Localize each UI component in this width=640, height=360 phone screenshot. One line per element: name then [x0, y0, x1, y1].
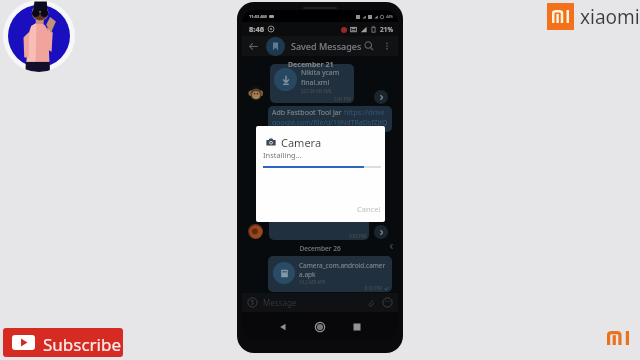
staticText: xiaomi [580, 4, 640, 30]
staticText: Nikita ycam [301, 68, 340, 78]
staticText: Camera [281, 135, 322, 150]
staticText: a.apk [299, 270, 316, 279]
staticText: 3:53 PM [349, 233, 366, 239]
staticText: 3:41 PM [334, 96, 351, 102]
button[interactable]: Subscribe [3, 328, 123, 357]
staticText: final.xml [301, 78, 330, 88]
staticText: https://drive [344, 108, 385, 118]
button[interactable]: Recent apps [350, 320, 364, 334]
staticText: December 26 [242, 244, 398, 253]
button[interactable]: More options [381, 40, 393, 52]
staticText: Subscribe [43, 333, 122, 356]
button[interactable]: Back [246, 39, 261, 54]
button[interactable]: Back [276, 320, 290, 334]
staticText: google.com/file/d/19NdTRaDsfZJtQ [272, 118, 388, 128]
staticText: Installing... [263, 150, 302, 160]
other: Mi logo [607, 331, 629, 345]
staticText: 8:46 [249, 24, 264, 34]
staticText: 207.96 KB XML [301, 88, 333, 94]
staticText: Camera_com.android.camer [299, 261, 386, 270]
staticText: 44% [386, 14, 393, 19]
staticText: December 21 [288, 60, 334, 70]
staticText: Adb Fastboot Tool Jar [272, 108, 344, 118]
staticText: Saved Messages [291, 40, 362, 52]
staticText: Message [263, 297, 297, 308]
button[interactable]: Cancel [357, 204, 385, 222]
staticText: 8:32 PM [365, 285, 382, 291]
staticText: 21% [380, 25, 393, 34]
staticText: Cancel [357, 204, 381, 214]
button[interactable]: Home [313, 320, 327, 334]
staticText: 11:53 AM [249, 14, 267, 19]
staticText: 19.2 MB APK [299, 279, 326, 285]
button[interactable]: Search [363, 40, 375, 52]
